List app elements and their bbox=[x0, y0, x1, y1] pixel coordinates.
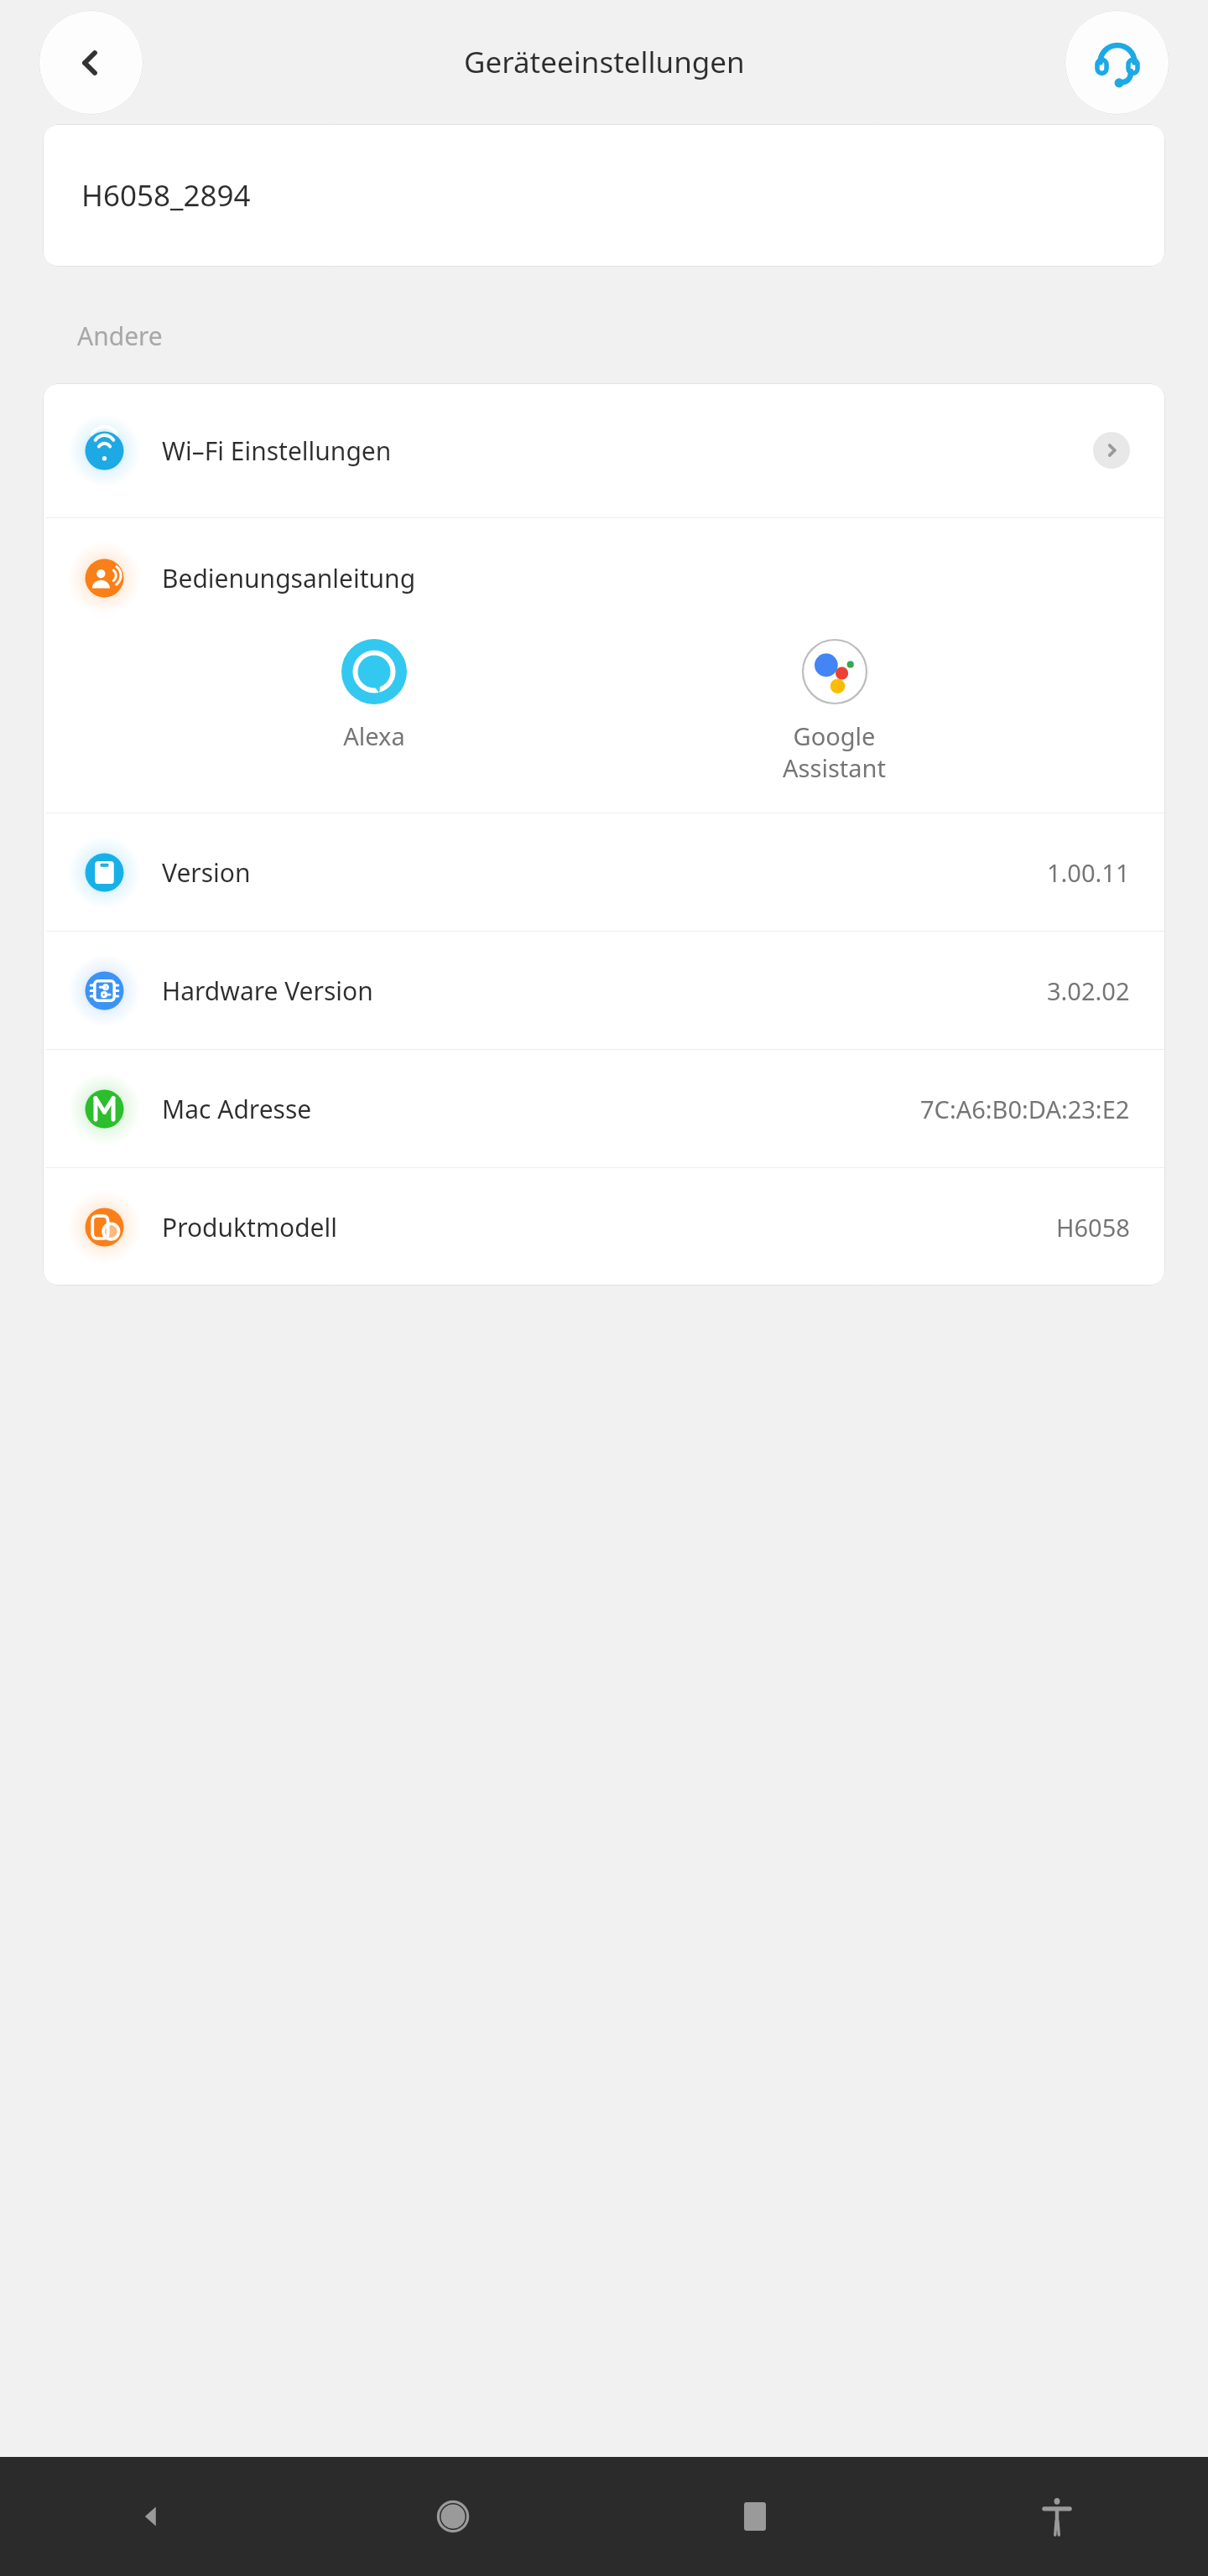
staticText: 3.02.02 bbox=[1047, 974, 1130, 1007]
button[interactable]: Home bbox=[302, 2457, 604, 2576]
button[interactable]: Support bbox=[1065, 10, 1169, 115]
staticText: Wi–Fi Einstellungen bbox=[162, 434, 392, 468]
staticText: 7C:A6:B0:DA:23:E2 bbox=[920, 1093, 1130, 1125]
button[interactable]: Produktmodell bbox=[43, 1168, 1165, 1285]
staticText: H6058 bbox=[1056, 1211, 1130, 1244]
staticText: Mac Adresse bbox=[162, 1092, 312, 1126]
button[interactable]: Back bbox=[39, 10, 143, 115]
button[interactable]: Bedienungsanleitung bbox=[43, 518, 1165, 637]
other: Open Wi-Fi settings bbox=[1093, 432, 1130, 469]
button[interactable]: H6058_2894 bbox=[43, 124, 1165, 267]
staticText: Alexa bbox=[343, 719, 405, 752]
button[interactable]: Mac Adresse bbox=[43, 1050, 1165, 1167]
button[interactable]: Recent apps bbox=[604, 2457, 906, 2576]
staticText: Andere bbox=[77, 319, 163, 353]
staticText: 1.00.11 bbox=[1047, 856, 1130, 889]
button[interactable]: Hardware Version bbox=[43, 932, 1165, 1049]
staticText: Google Assistant bbox=[783, 719, 886, 784]
button[interactable]: Google Assistant bbox=[604, 639, 1065, 784]
staticText: H6058_2894 bbox=[81, 175, 251, 216]
button[interactable]: Back bbox=[0, 2457, 302, 2576]
button[interactable]: Version bbox=[43, 813, 1165, 931]
button[interactable]: Accessibility bbox=[906, 2457, 1208, 2576]
staticText: Version bbox=[162, 855, 251, 890]
button[interactable]: Alexa bbox=[143, 639, 604, 752]
staticText: Bedienungsanleitung bbox=[162, 561, 416, 595]
staticText: Geräteeinstellungen bbox=[464, 42, 745, 82]
staticText: Produktmodell bbox=[162, 1210, 337, 1244]
staticText: Hardware Version bbox=[162, 974, 373, 1008]
button[interactable]: Wi–Fi Einstellungen bbox=[43, 383, 1165, 517]
